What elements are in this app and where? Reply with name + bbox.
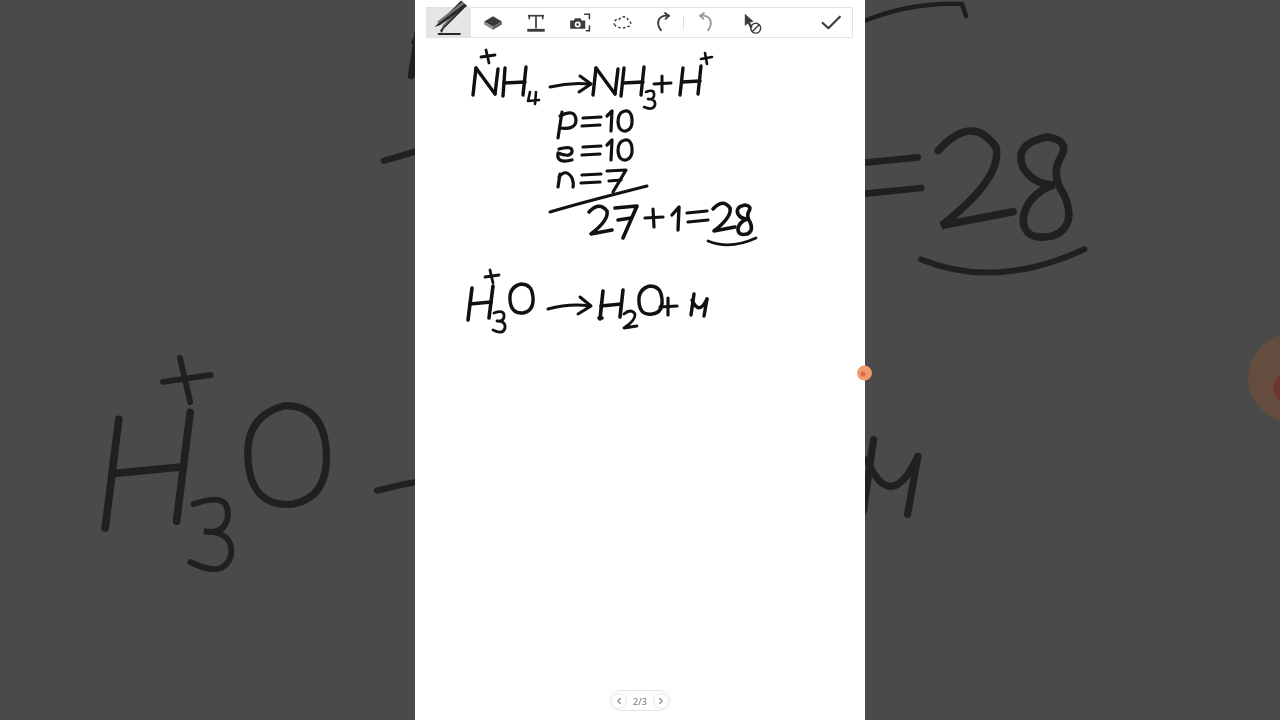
button[interactable]: Lasso select bbox=[600, 7, 643, 38]
button[interactable]: Pen bbox=[426, 7, 471, 38]
button[interactable]: Redo bbox=[684, 7, 727, 38]
button[interactable]: 2/3 bbox=[627, 695, 653, 707]
button[interactable]: Next page bbox=[653, 693, 669, 709]
button[interactable]: Eraser bbox=[471, 7, 514, 38]
button[interactable]: Text bbox=[514, 7, 557, 38]
button[interactable]: Capture bbox=[557, 7, 600, 38]
button[interactable]: Disable touch drawing bbox=[727, 7, 772, 38]
button[interactable]: Previous page bbox=[611, 693, 627, 709]
staticText: 2/3 bbox=[633, 695, 647, 707]
button[interactable]: Undo bbox=[643, 7, 683, 38]
button[interactable]: Done bbox=[809, 7, 853, 38]
other: Pen bbox=[430, 0, 468, 30]
